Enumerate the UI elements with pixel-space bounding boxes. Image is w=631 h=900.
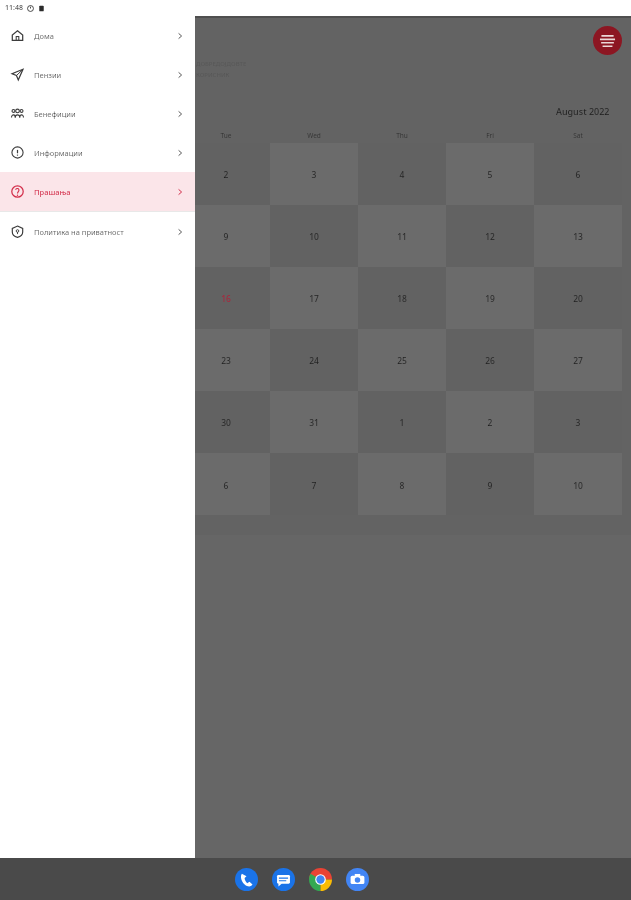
button[interactable]: 3	[300, 169, 328, 181]
button[interactable]: 6	[212, 480, 240, 492]
staticText: КОРИСНИК	[196, 71, 230, 79]
button[interactable]: 9	[476, 480, 504, 492]
button[interactable]: 11	[388, 231, 416, 243]
button[interactable]: 12	[476, 231, 504, 243]
button[interactable]: 2	[212, 169, 240, 181]
button[interactable]: Политика на приватност	[0, 212, 195, 251]
button[interactable]: 26	[476, 355, 504, 367]
button[interactable]: 13	[564, 231, 592, 243]
button[interactable]: Прашања	[0, 172, 195, 211]
staticText: August 2022	[556, 105, 610, 117]
button[interactable]: 23	[212, 355, 240, 367]
button[interactable]: Бенефиции	[0, 94, 195, 133]
button[interactable]: 5	[476, 169, 504, 181]
button[interactable]: 10	[300, 231, 328, 243]
staticText: Политика на приватност	[34, 227, 175, 237]
staticText: Tue	[214, 131, 238, 140]
button[interactable]: 19	[476, 293, 504, 305]
staticText: Fri	[478, 131, 502, 140]
button[interactable]: 18	[388, 293, 416, 305]
button[interactable]: Camera	[346, 868, 369, 891]
button[interactable]: 25	[388, 355, 416, 367]
staticText: Пензии	[34, 70, 175, 80]
button[interactable]: 31	[300, 417, 328, 429]
button[interactable]: Phone	[235, 868, 258, 891]
button[interactable]: Chrome	[309, 868, 332, 891]
button[interactable]: 17	[300, 293, 328, 305]
button[interactable]: Информации	[0, 133, 195, 172]
button[interactable]: 6	[564, 169, 592, 181]
button[interactable]: 3	[564, 417, 592, 429]
button[interactable]: 7	[300, 480, 328, 492]
button[interactable]: 1	[388, 417, 416, 429]
button[interactable]: 2	[476, 417, 504, 429]
button[interactable]: 30	[212, 417, 240, 429]
button[interactable]: 8	[388, 480, 416, 492]
button[interactable]: 4	[388, 169, 416, 181]
staticText: Wed	[302, 131, 326, 140]
button[interactable]: Menu	[593, 26, 622, 55]
staticText: Информации	[34, 148, 175, 158]
staticText: Thu	[390, 131, 414, 140]
staticText: Бенефиции	[34, 109, 175, 119]
staticText: ДОБРЕДОЈДОВТЕ	[196, 60, 247, 68]
staticText: Sat	[566, 131, 590, 140]
button[interactable]: Messages	[272, 868, 295, 891]
staticText: 11:48	[5, 3, 23, 13]
button[interactable]: 10	[564, 480, 592, 492]
staticText: Прашања	[34, 187, 175, 197]
staticText: Дома	[34, 31, 175, 41]
button[interactable]: 16	[212, 293, 240, 305]
button[interactable]: 27	[564, 355, 592, 367]
button[interactable]: 9	[212, 231, 240, 243]
button[interactable]: 24	[300, 355, 328, 367]
button[interactable]: Пензии	[0, 55, 195, 94]
button[interactable]: 20	[564, 293, 592, 305]
button[interactable]: Дома	[0, 16, 195, 55]
